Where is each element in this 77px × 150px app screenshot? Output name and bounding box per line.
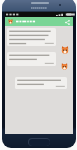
button[interactable]: [7, 28, 56, 46]
button[interactable]: Share: [63, 18, 71, 26]
button[interactable]: [15, 77, 67, 89]
button[interactable]: [7, 52, 56, 66]
